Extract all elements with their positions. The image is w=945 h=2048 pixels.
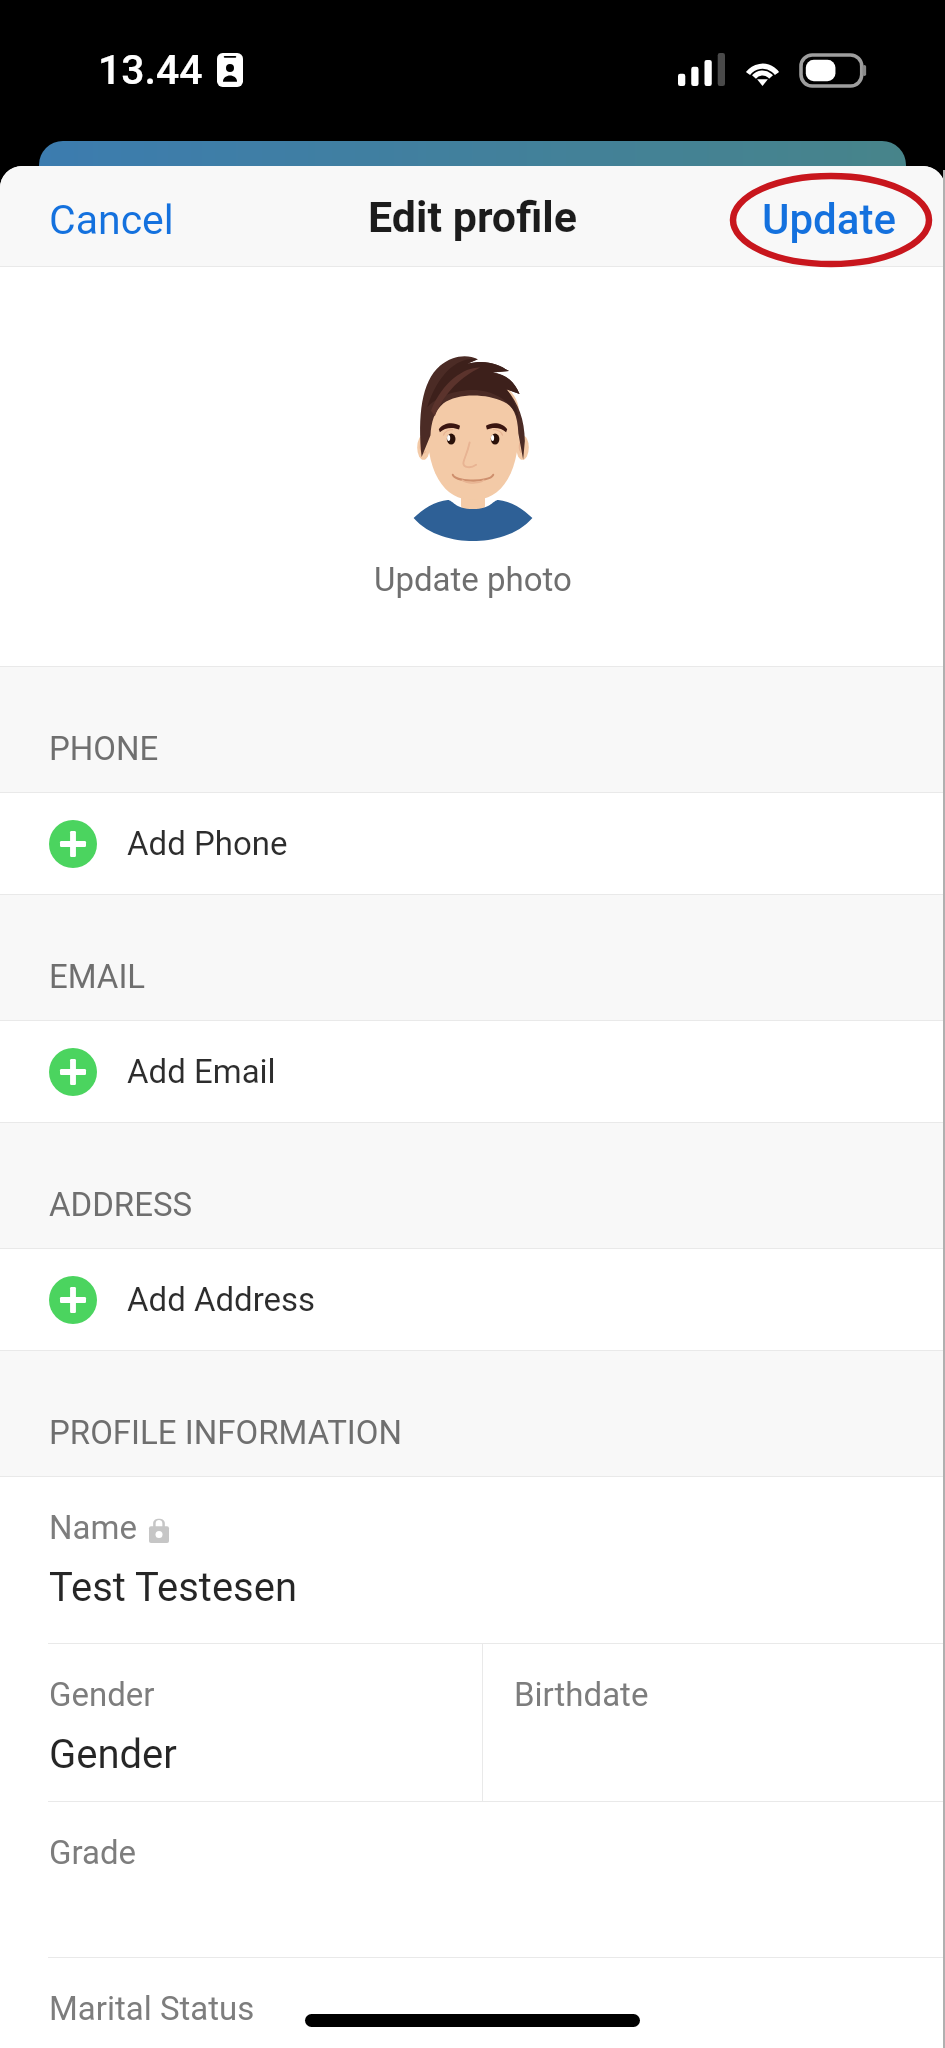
button[interactable]: Cancel — [0, 173, 210, 261]
staticText: Update — [762, 195, 897, 244]
button[interactable]: Add Phone — [0, 793, 945, 894]
staticText: Birthdate — [514, 1675, 649, 1714]
staticText: Gender — [49, 1675, 155, 1714]
button[interactable]: Update — [726, 172, 945, 261]
staticText: 13.44 — [98, 46, 203, 94]
staticText: Cancel — [49, 196, 174, 244]
staticText: Edit profile — [368, 192, 577, 242]
staticText: Add Email — [127, 1052, 276, 1091]
staticText: Grade — [49, 1833, 137, 1872]
button[interactable]: Update profile photo — [358, 354, 588, 599]
button[interactable]: Add Email — [0, 1021, 945, 1122]
button[interactable]: Gender — [0, 1644, 482, 1801]
staticText: Gender — [49, 1731, 177, 1778]
staticText: ADDRESS — [49, 1185, 193, 1224]
staticText: Update photo — [374, 560, 572, 599]
staticText: Name — [49, 1508, 137, 1547]
button[interactable]: Marital Status — [0, 1958, 945, 2048]
staticText: Test Testesen — [49, 1564, 298, 1611]
staticText: EMAIL — [49, 957, 146, 996]
button[interactable]: Name — [0, 1477, 945, 1644]
staticText: PHONE — [49, 729, 159, 768]
staticText: Add Phone — [127, 824, 288, 863]
button[interactable]: Birthdate — [483, 1644, 945, 1801]
button[interactable]: Grade — [0, 1802, 945, 1958]
staticText: Add Address — [127, 1280, 316, 1319]
button[interactable]: Add Address — [0, 1249, 945, 1350]
staticText: PROFILE INFORMATION — [49, 1413, 403, 1452]
staticText: Marital Status — [49, 1989, 255, 2028]
